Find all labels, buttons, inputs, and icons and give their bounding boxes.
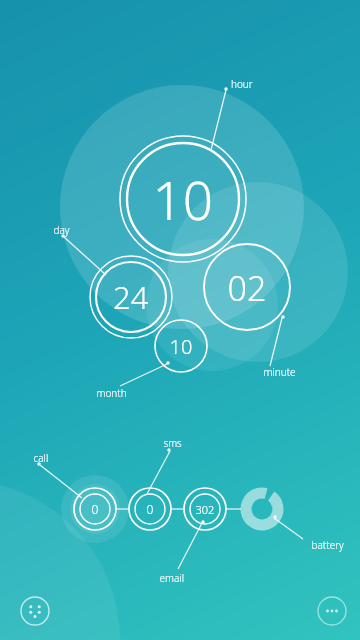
button[interactable]: Month: [155, 320, 207, 372]
button[interactable]: Email: [183, 487, 227, 531]
button[interactable]: Messages: [128, 487, 172, 531]
button[interactable]: More options: [316, 595, 348, 627]
button[interactable]: Hour: [120, 136, 246, 262]
button[interactable]: Minute: [204, 244, 290, 330]
button[interactable]: Calls: [73, 487, 117, 531]
button[interactable]: Day: [90, 256, 172, 338]
button[interactable]: Battery: [240, 487, 284, 531]
button[interactable]: Apps: [19, 595, 51, 627]
